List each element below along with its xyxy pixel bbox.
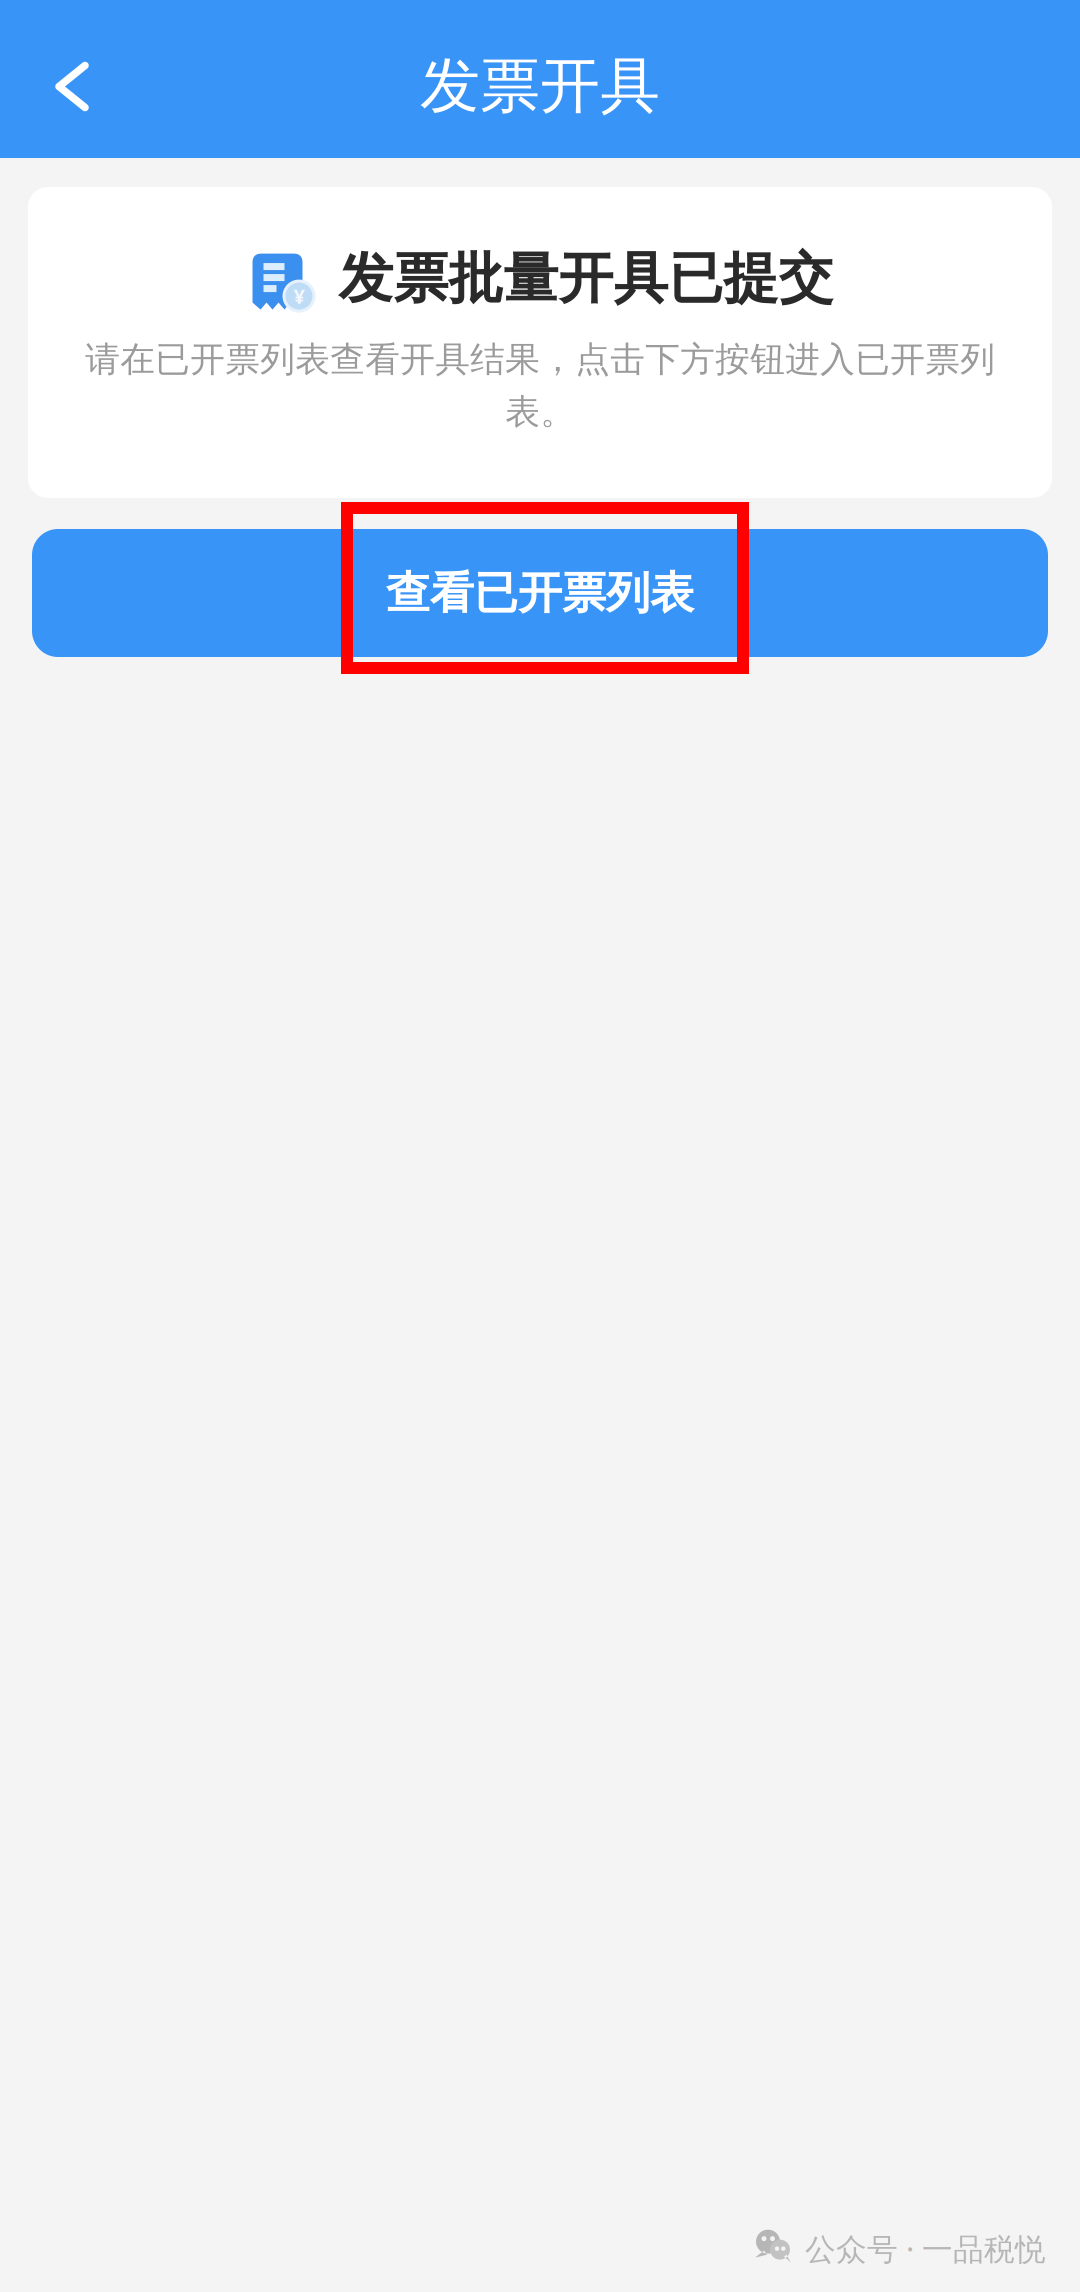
staticText: 查看已开票列表 [386, 566, 694, 620]
staticText: 发票开具 [420, 49, 660, 123]
staticText: 请在已开票列表查看开具结果，点击下方按钮进入已开票列表。 [85, 338, 995, 433]
button[interactable]: 查看已开票列表 [32, 529, 1048, 657]
button[interactable]: 返回 [0, 22, 143, 136]
staticText: 发票批量开具已提交 [338, 245, 833, 312]
staticText: ¥ [293, 283, 304, 309]
staticText: 公众号 · 一品税悦 [805, 2228, 1046, 2269]
